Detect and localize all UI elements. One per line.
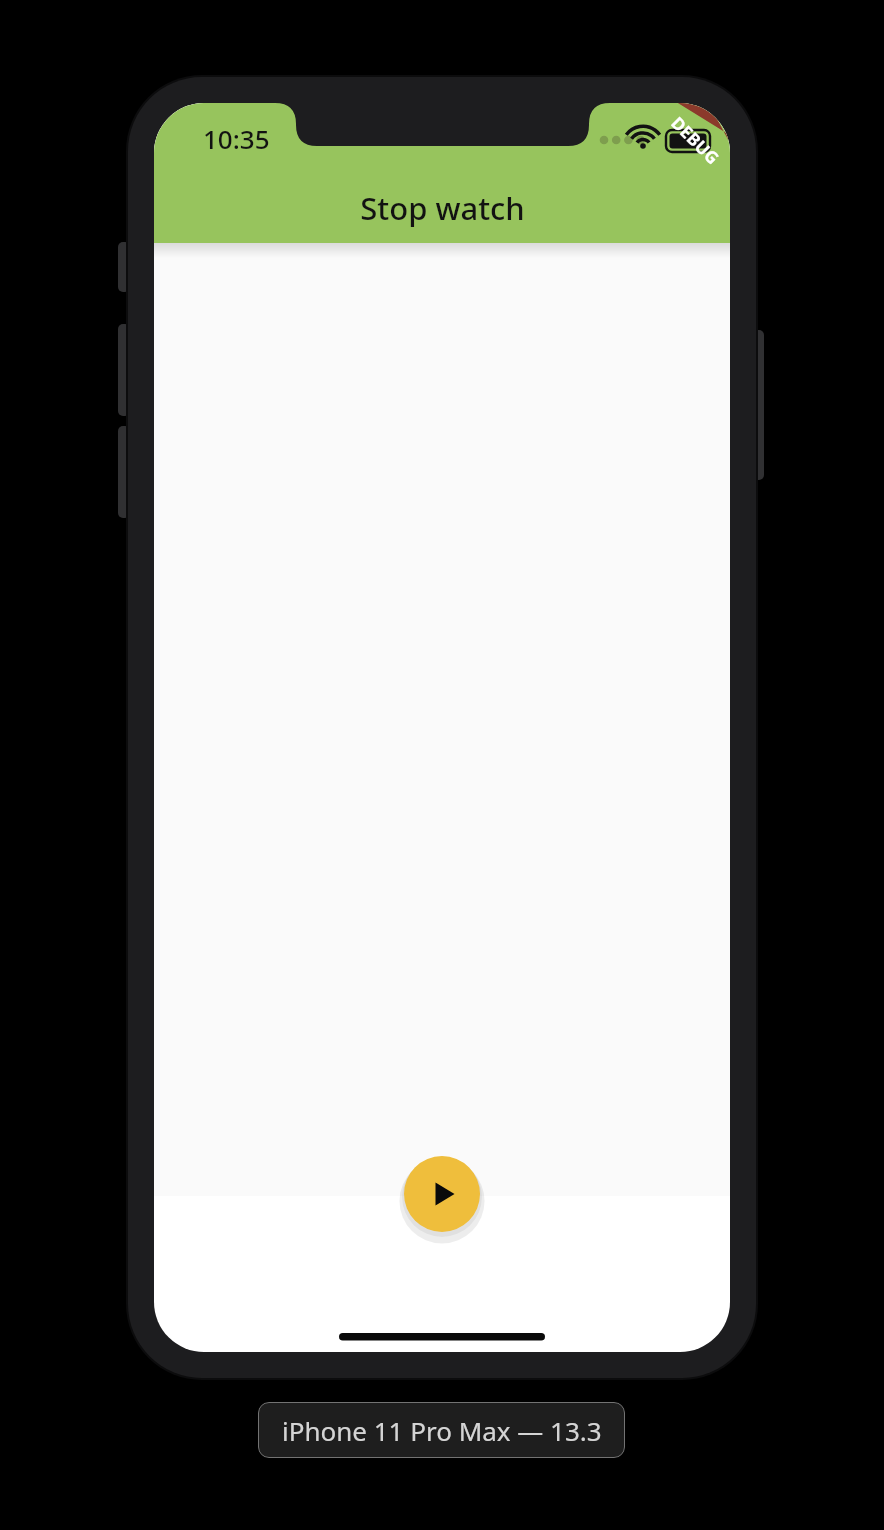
- staticText: iPhone 11 Pro Max — 13.3: [282, 1413, 602, 1448]
- button[interactable]: Start stopwatch: [404, 1156, 480, 1232]
- staticText: Stop watch: [360, 187, 525, 229]
- staticText: 10:35: [203, 121, 270, 156]
- staticText: DEBUG: [666, 111, 724, 169]
